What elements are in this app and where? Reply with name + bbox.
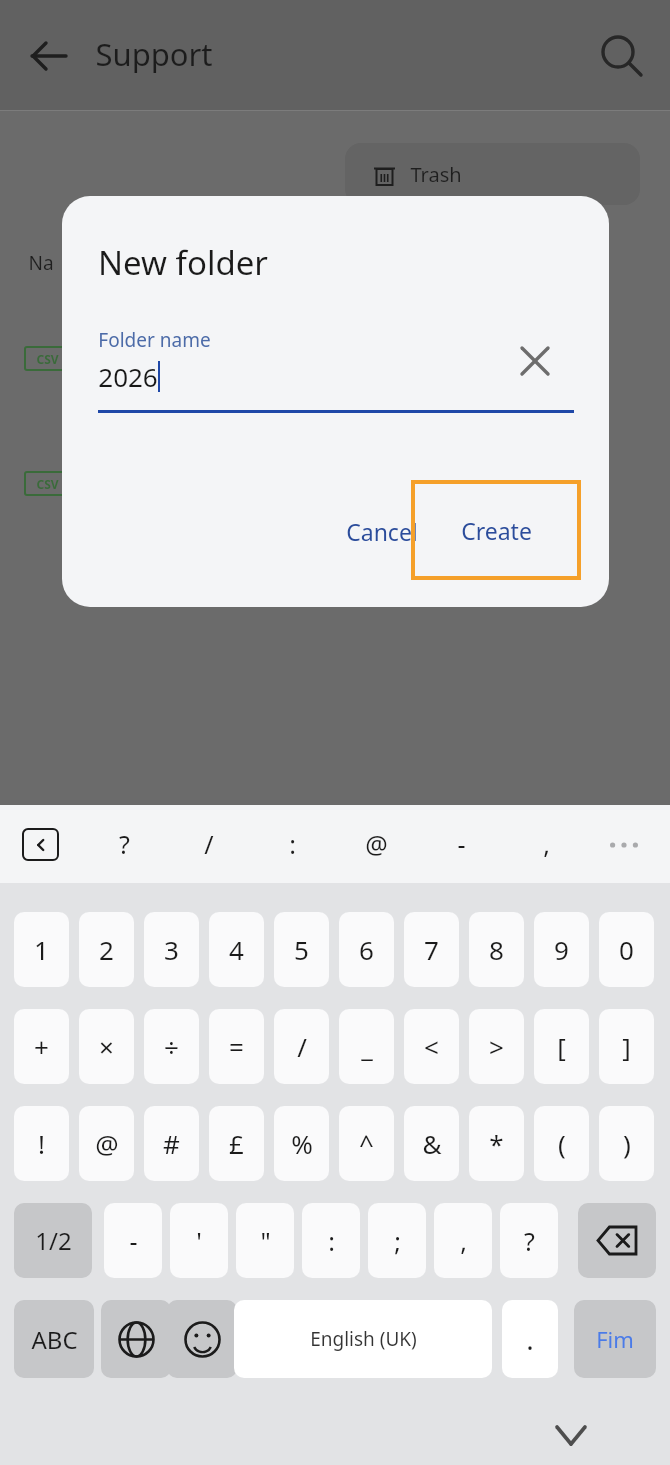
staticText: English (UK) — [310, 1326, 417, 1352]
staticText: - — [129, 1224, 138, 1258]
staticText: 9 — [554, 932, 569, 967]
button[interactable]: Change language — [101, 1300, 171, 1378]
button[interactable]: [ — [534, 1009, 589, 1084]
button[interactable]: , — [434, 1203, 492, 1278]
button[interactable]: 6 — [339, 912, 394, 987]
button[interactable]: English (UK) — [234, 1300, 492, 1378]
button[interactable]: 5 — [274, 912, 329, 987]
button[interactable]: Emoji — [167, 1300, 237, 1378]
staticText: £ — [229, 1126, 244, 1161]
staticText: # — [163, 1126, 180, 1161]
staticText: ! — [38, 1126, 45, 1161]
staticText: ] — [622, 1029, 631, 1064]
staticText: Trash — [410, 161, 462, 188]
button[interactable]: , — [522, 820, 570, 868]
button[interactable]: < — [404, 1009, 459, 1084]
button[interactable]: _ — [339, 1009, 394, 1084]
button[interactable]: ) — [599, 1106, 654, 1181]
button[interactable]: / — [185, 820, 233, 868]
button[interactable]: Hide keyboard — [548, 1413, 594, 1459]
button[interactable]: ; — [368, 1203, 426, 1278]
button[interactable]: : — [302, 1203, 360, 1278]
staticText: Create — [461, 515, 532, 546]
button[interactable]: ? — [100, 820, 148, 868]
button[interactable]: - — [104, 1203, 162, 1278]
staticText: Folder name — [98, 327, 211, 353]
staticText: + — [34, 1029, 49, 1064]
staticText: CSV — [36, 351, 59, 367]
button[interactable]: Clear text — [508, 334, 562, 388]
staticText: 8 — [489, 932, 504, 967]
staticText: 2 — [99, 932, 114, 967]
button[interactable]: 8 — [469, 912, 524, 987]
button[interactable]: " — [236, 1203, 294, 1278]
staticText: ? — [119, 827, 130, 861]
button[interactable]: ÷ — [144, 1009, 199, 1084]
staticText: * — [489, 1126, 504, 1161]
button[interactable]: 2 — [79, 912, 134, 987]
button[interactable]: Search — [596, 30, 646, 80]
button[interactable]: * — [469, 1106, 524, 1181]
button[interactable]: # — [144, 1106, 199, 1181]
button[interactable]: : — [268, 820, 316, 868]
button[interactable]: + — [14, 1009, 69, 1084]
button[interactable]: ] — [599, 1009, 654, 1084]
button[interactable]: & — [404, 1106, 459, 1181]
button[interactable]: ' — [170, 1203, 228, 1278]
button[interactable]: ^ — [339, 1106, 394, 1181]
staticText: " — [260, 1224, 271, 1258]
staticText: . — [526, 1320, 534, 1358]
button[interactable]: . — [502, 1300, 558, 1378]
staticText: 3 — [164, 932, 179, 967]
staticText: 1/2 — [35, 1224, 72, 1257]
button[interactable]: 3 — [144, 912, 199, 987]
button[interactable]: - — [437, 820, 485, 868]
button[interactable]: 1 — [14, 912, 69, 987]
button[interactable]: Create — [411, 480, 581, 580]
button[interactable]: @ — [79, 1106, 134, 1181]
button[interactable]: % — [274, 1106, 329, 1181]
staticText: 6 — [359, 932, 374, 967]
button[interactable]: 1/2 — [14, 1203, 92, 1278]
button[interactable]: ABC — [14, 1300, 94, 1378]
staticText: / — [204, 827, 214, 861]
staticText: New folder — [98, 240, 268, 285]
button[interactable]: @ — [352, 820, 400, 868]
button[interactable]: More suggestions — [602, 823, 646, 867]
button[interactable]: / — [274, 1009, 329, 1084]
staticText: Support — [95, 33, 213, 75]
staticText: , — [543, 827, 550, 861]
button[interactable]: 9 — [534, 912, 589, 987]
button[interactable]: 7 — [404, 912, 459, 987]
staticText: × — [99, 1029, 114, 1064]
button[interactable]: > — [469, 1009, 524, 1084]
button[interactable]: ! — [14, 1106, 69, 1181]
staticText: : — [289, 827, 296, 861]
staticText: 0 — [619, 932, 634, 967]
button[interactable]: £ — [209, 1106, 264, 1181]
button[interactable]: ( — [534, 1106, 589, 1181]
button[interactable]: 4 — [209, 912, 264, 987]
staticText: ( — [558, 1126, 566, 1161]
button[interactable]: Fim — [574, 1300, 656, 1378]
staticText: : — [328, 1224, 335, 1258]
staticText: Fim — [596, 1324, 634, 1354]
button[interactable]: Previous suggestions — [22, 828, 59, 861]
button[interactable]: × — [79, 1009, 134, 1084]
staticText: - — [457, 827, 466, 861]
button[interactable]: Backspace — [578, 1203, 656, 1278]
button[interactable]: 0 — [599, 912, 654, 987]
staticText: Cancel — [346, 516, 418, 547]
staticText: / — [297, 1029, 307, 1064]
button[interactable]: Trash — [345, 143, 640, 205]
button[interactable]: = — [209, 1009, 264, 1084]
button[interactable]: Back — [26, 32, 74, 80]
staticText: , — [460, 1224, 467, 1258]
button[interactable]: Cancel — [324, 501, 440, 562]
staticText: > — [489, 1029, 504, 1064]
staticText: ^ — [359, 1126, 374, 1161]
staticText: _ — [361, 1029, 373, 1064]
staticText: % — [291, 1126, 313, 1161]
button[interactable]: ? — [500, 1203, 558, 1278]
staticText: Na — [28, 250, 54, 276]
